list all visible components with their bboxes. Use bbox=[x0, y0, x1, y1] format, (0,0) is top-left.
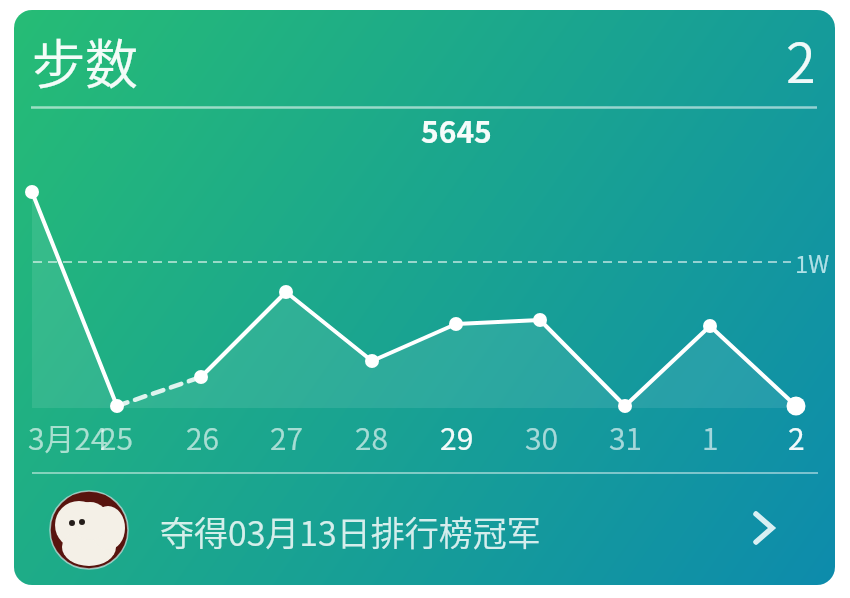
staticText: 5645 bbox=[421, 108, 492, 151]
button[interactable]: 夺得03月13日排行榜冠军 bbox=[14, 488, 835, 585]
staticText: 2 bbox=[786, 20, 816, 98]
staticText: 28 bbox=[355, 415, 388, 458]
staticText: 25 bbox=[100, 415, 133, 458]
staticText: 30 bbox=[525, 415, 558, 458]
staticText: 26 bbox=[186, 415, 219, 458]
staticText: 1W bbox=[795, 245, 830, 280]
staticText: 27 bbox=[270, 415, 303, 458]
staticText: 3月24 bbox=[28, 415, 108, 458]
staticText: 31 bbox=[609, 415, 642, 458]
staticText: 2 bbox=[788, 415, 805, 458]
staticText: 夺得03月13日排行榜冠军 bbox=[160, 507, 541, 553]
staticText: 步数 bbox=[32, 23, 138, 100]
staticText: 29 bbox=[440, 415, 474, 458]
staticText: 1 bbox=[702, 415, 719, 458]
button[interactable]: 步数 bbox=[14, 10, 835, 585]
